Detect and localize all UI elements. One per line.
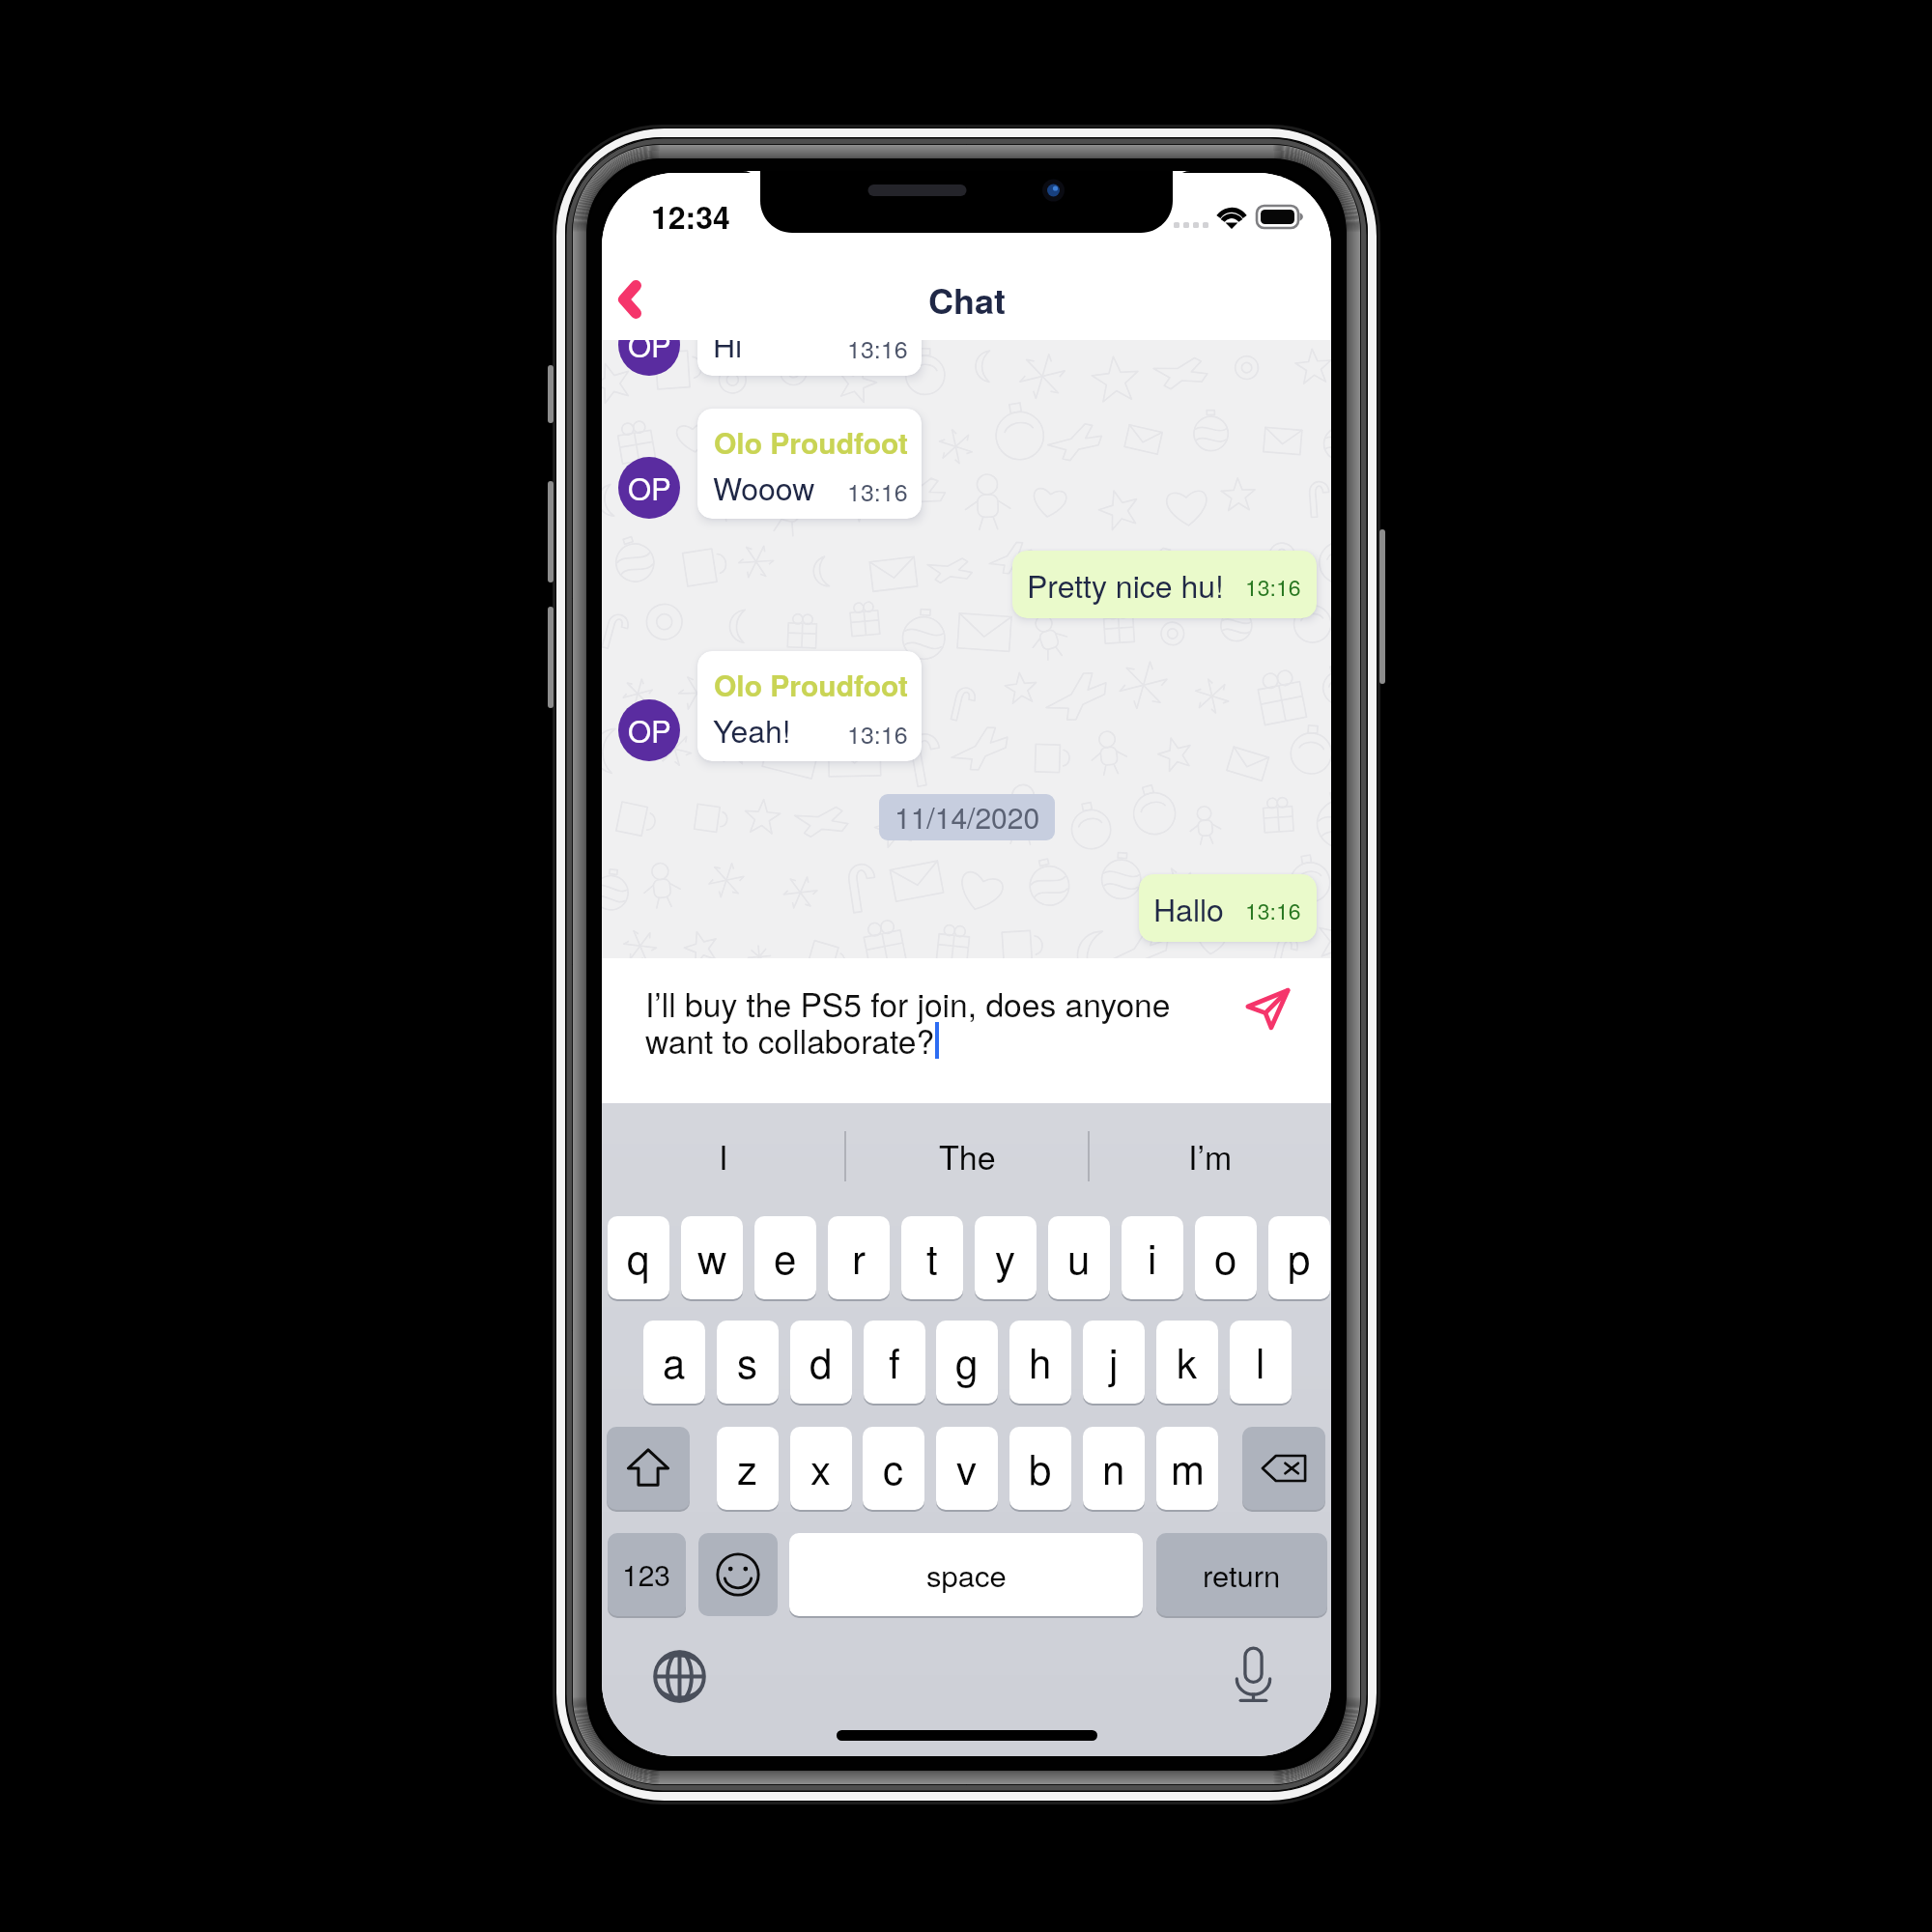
button[interactable]: w [681, 1216, 743, 1299]
button[interactable]: v [936, 1427, 998, 1510]
staticText: OP [628, 340, 671, 365]
staticText: o [1214, 1228, 1237, 1286]
button[interactable]: d [790, 1321, 852, 1404]
staticText: y [995, 1228, 1016, 1286]
staticText: Yeah! [713, 707, 791, 752]
staticText: I’m [1188, 1132, 1233, 1179]
button[interactable]: z [717, 1427, 779, 1510]
staticText: Hi [713, 340, 743, 366]
staticText: h [1029, 1332, 1052, 1390]
staticText: 123 [622, 1553, 671, 1595]
staticText: 11/14/2020 [895, 796, 1040, 838]
button[interactable]: OP [618, 340, 680, 376]
staticText: l [1256, 1332, 1265, 1390]
button[interactable]: The [846, 1103, 1088, 1208]
staticText: The [939, 1132, 996, 1179]
staticText: m [1171, 1438, 1205, 1496]
staticText: I [719, 1132, 728, 1179]
staticText: Chat [928, 274, 1006, 325]
staticText: p [1288, 1228, 1311, 1286]
button[interactable]: x [790, 1427, 852, 1510]
staticText: r [852, 1228, 866, 1286]
button[interactable]: OP [618, 699, 680, 761]
staticText: I’ll buy the PS5 for join, does anyone w… [645, 980, 1171, 1064]
staticText: f [889, 1332, 900, 1390]
button[interactable]: c [863, 1427, 924, 1510]
staticText: a [663, 1332, 686, 1390]
button[interactable]: h [1009, 1321, 1071, 1404]
button[interactable]: m [1156, 1427, 1218, 1510]
button[interactable]: g [936, 1321, 998, 1404]
button[interactable]: Olo Proudfoot [697, 651, 922, 761]
staticText: k [1177, 1332, 1198, 1390]
staticText: 13:16 [847, 340, 908, 365]
button[interactable]: OP [618, 457, 680, 519]
staticText: OP [628, 708, 671, 751]
staticText: Olo Proudfoot [714, 421, 909, 463]
staticText: s [737, 1332, 758, 1390]
button[interactable]: a [643, 1321, 705, 1404]
button[interactable]: p [1268, 1216, 1330, 1299]
staticText: t [926, 1228, 938, 1286]
staticText: c [883, 1438, 904, 1496]
staticText: 13:16 [1245, 571, 1301, 603]
button[interactable]: I’m [1090, 1103, 1331, 1208]
button[interactable]: j [1083, 1321, 1145, 1404]
staticText: Olo Proudfoot [714, 664, 909, 705]
button[interactable]: q [608, 1216, 669, 1299]
button[interactable]: i [1122, 1216, 1183, 1299]
staticText: g [955, 1332, 979, 1390]
button[interactable]: s [717, 1321, 779, 1404]
button[interactable]: I [602, 1103, 844, 1208]
staticText: z [737, 1438, 758, 1496]
button[interactable]: l [1230, 1321, 1292, 1404]
button[interactable]: f [864, 1321, 925, 1404]
button[interactable]: Emoji [698, 1533, 778, 1616]
staticText: j [1109, 1332, 1119, 1390]
staticText: i [1148, 1228, 1157, 1286]
button[interactable]: t [901, 1216, 963, 1299]
staticText: b [1029, 1438, 1052, 1496]
button[interactable]: 11/14/2020 [879, 794, 1055, 840]
button[interactable]: r [828, 1216, 890, 1299]
staticText: 12:34 [651, 194, 730, 239]
staticText: 13:16 [847, 716, 908, 751]
button[interactable]: u [1048, 1216, 1110, 1299]
staticText: 13:16 [1245, 895, 1301, 926]
staticText: 13:16 [847, 473, 908, 508]
staticText: return [1203, 1552, 1281, 1595]
button[interactable]: Backspace [1242, 1427, 1325, 1510]
staticText: w [697, 1228, 727, 1286]
button[interactable]: Hallo [1139, 874, 1317, 942]
staticText: u [1067, 1228, 1091, 1286]
staticText: v [956, 1438, 978, 1496]
button[interactable]: y [975, 1216, 1037, 1299]
staticText: Wooow [713, 465, 815, 509]
staticText: d [810, 1332, 833, 1390]
staticText: Hallo [1153, 886, 1224, 930]
staticText: x [810, 1438, 832, 1496]
staticText: q [627, 1228, 650, 1286]
staticText: OP [628, 466, 671, 508]
button[interactable]: b [1009, 1427, 1071, 1510]
button[interactable]: return [1156, 1533, 1327, 1616]
button[interactable]: 123 [608, 1533, 686, 1616]
button[interactable]: e [754, 1216, 816, 1299]
button[interactable]: space [789, 1533, 1143, 1616]
button[interactable]: n [1083, 1427, 1145, 1510]
button[interactable]: Olo Proudfoot [697, 340, 922, 376]
button[interactable]: k [1156, 1321, 1218, 1404]
staticText: space [926, 1552, 1007, 1595]
staticText: Pretty nice hu! [1027, 562, 1224, 607]
button[interactable]: Olo Proudfoot [697, 409, 922, 519]
staticText: e [774, 1228, 797, 1286]
button[interactable]: Change keyboard [646, 1643, 712, 1709]
staticText: n [1102, 1438, 1125, 1496]
button[interactable]: Send [1233, 974, 1303, 1044]
button[interactable]: Back [602, 264, 666, 335]
button[interactable]: o [1195, 1216, 1257, 1299]
button[interactable]: Pretty nice hu! [1012, 551, 1317, 618]
button[interactable]: Dictate [1220, 1641, 1286, 1707]
button[interactable]: Shift [607, 1427, 690, 1510]
